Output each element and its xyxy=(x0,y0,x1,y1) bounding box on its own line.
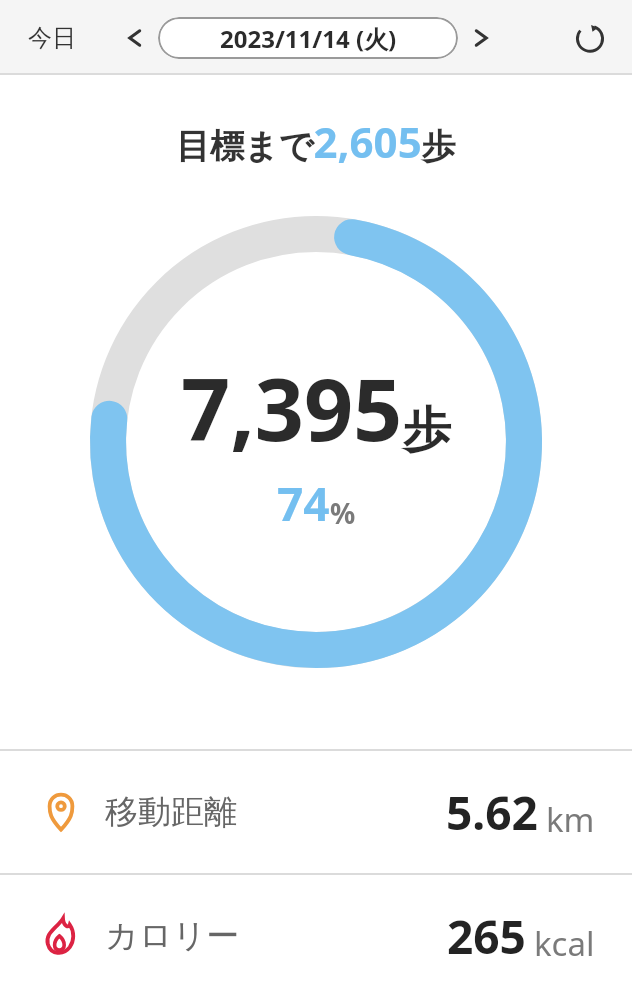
staticText: kcal xyxy=(534,921,595,966)
staticText: 7,395 xyxy=(181,349,403,466)
staticText: 2023/11/14 (火) xyxy=(220,22,397,55)
button[interactable]: Next day xyxy=(462,18,502,58)
button[interactable]: 移動距離 xyxy=(0,751,632,873)
staticText: % xyxy=(330,494,356,532)
staticText: 今日 xyxy=(28,23,76,53)
button[interactable]: 今日 xyxy=(22,15,82,61)
staticText: 74 xyxy=(277,472,330,535)
button[interactable]: 2023/11/14 (火) xyxy=(158,17,458,59)
staticText: 歩 xyxy=(403,400,451,460)
staticText: 移動距離 xyxy=(105,791,237,833)
staticText: カロリー xyxy=(105,915,240,957)
staticText: km xyxy=(546,797,595,842)
staticText: 5.62 xyxy=(446,781,538,844)
staticText: 265 xyxy=(447,905,526,968)
button[interactable]: カロリー xyxy=(0,875,632,997)
button[interactable]: Previous day xyxy=(114,18,154,58)
button[interactable]: Refresh xyxy=(566,14,614,62)
staticText: 目標まで2,605歩 xyxy=(176,113,456,170)
